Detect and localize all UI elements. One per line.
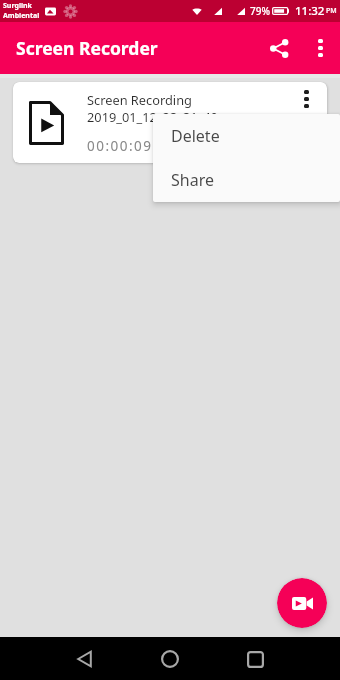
staticText: 2019_01_12_23_31_40 xyxy=(87,108,218,125)
staticText: PM xyxy=(326,6,337,16)
button[interactable]: Record xyxy=(277,578,327,628)
button[interactable]: Delete xyxy=(153,114,340,158)
staticText: Screen Recorder xyxy=(16,36,158,60)
staticText: Ambiental xyxy=(3,11,40,21)
staticText: 79% xyxy=(250,4,270,18)
button[interactable]: Back xyxy=(70,645,98,673)
button[interactable]: Home xyxy=(156,645,184,673)
staticText: Share xyxy=(171,169,214,191)
button[interactable]: Screen Recording xyxy=(13,82,327,163)
button[interactable]: Share xyxy=(153,158,340,202)
staticText: 11:32 xyxy=(295,3,325,19)
staticText: 00:00:09 xyxy=(87,137,153,155)
button[interactable]: Recents xyxy=(241,645,269,673)
staticText: Screen Recording xyxy=(87,91,192,108)
button[interactable]: Share xyxy=(257,26,301,70)
staticText: Delete xyxy=(171,125,220,147)
button[interactable]: More options xyxy=(301,29,339,67)
staticText: Surglink xyxy=(3,1,32,11)
button[interactable]: More options xyxy=(290,83,322,115)
